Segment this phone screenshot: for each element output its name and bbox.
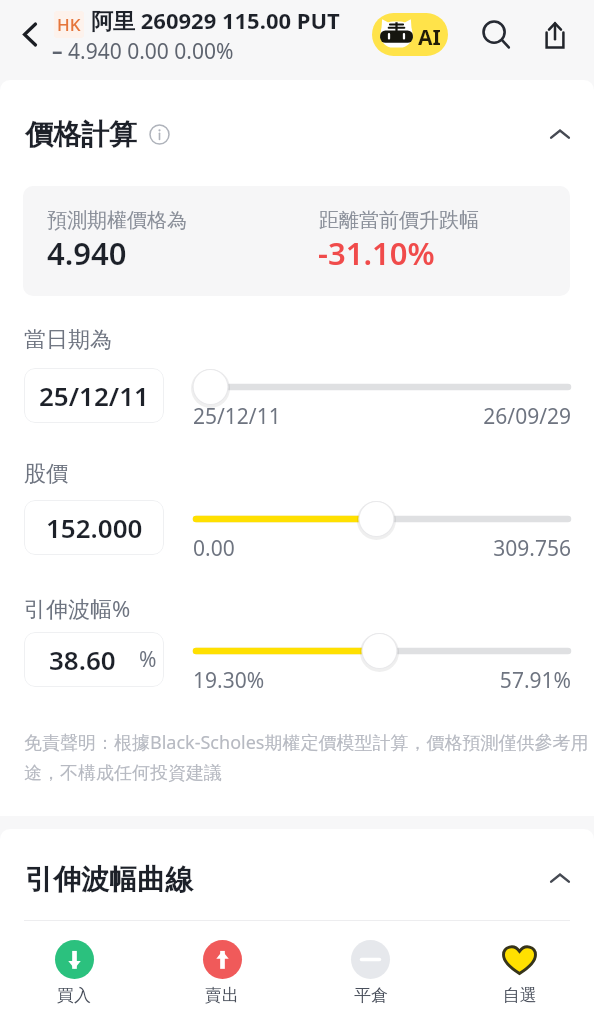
staticText: 賣出 [205, 985, 239, 1006]
button[interactable]: Search [474, 13, 518, 57]
staticText: 阿里 260929 115.00 PUT [91, 5, 340, 35]
button[interactable]: 25/12/11 [24, 368, 164, 423]
staticText: 25/12/11 [193, 402, 281, 431]
button[interactable]: 152.000 [24, 500, 164, 555]
button[interactable]: 平倉 [296, 921, 445, 1024]
staticText: 當日期為 [24, 326, 112, 354]
button[interactable]: Collapse volatility curve [541, 860, 579, 898]
button[interactable]: 自選 [445, 921, 594, 1024]
staticText: 預測期權價格為 [47, 208, 187, 233]
button[interactable]: Share [533, 13, 577, 57]
staticText: 26/09/29 [300, 402, 571, 431]
staticText: AI [418, 23, 441, 52]
staticText: 距離當前價升跌幅 [319, 208, 479, 233]
staticText: 57.91% [300, 666, 571, 695]
staticText: 免責聲明：根據Black-Scholes期權定價模型計算，價格預測僅供參考用途，… [24, 730, 590, 785]
staticText: 買入 [57, 985, 91, 1006]
button[interactable]: 賣出 [148, 921, 296, 1024]
button[interactable]: 股價 slider [176, 499, 586, 539]
staticText: 引伸波幅% [24, 593, 131, 623]
staticText: 價格計算 [25, 117, 137, 152]
staticText: % [139, 645, 157, 674]
button[interactable]: AI assistant [372, 13, 448, 56]
staticText: 38.60 [49, 642, 116, 677]
staticText: 自選 [503, 985, 537, 1006]
staticText: 股價 [24, 460, 68, 488]
staticText: 4.940 [47, 232, 127, 274]
staticText: – [52, 37, 63, 66]
staticText: 4.940 0.00 0.00% [68, 37, 234, 66]
button[interactable]: Collapse price calculation [541, 116, 579, 154]
button[interactable]: 38.60 [24, 632, 164, 687]
staticText: 引伸波幅曲線 [25, 862, 193, 897]
staticText: 19.30% [193, 666, 265, 695]
staticText: -31.10% [318, 232, 435, 274]
button[interactable]: 當日期為 slider [176, 367, 586, 407]
button[interactable]: Info [149, 124, 170, 145]
button[interactable]: Back [8, 12, 52, 56]
staticText: 25/12/11 [39, 378, 149, 413]
staticText: 152.000 [46, 510, 143, 545]
staticText: 0.00 [193, 534, 235, 563]
button[interactable]: 買入 [0, 921, 148, 1024]
staticText: 平倉 [354, 985, 388, 1006]
staticText: 309.756 [300, 534, 571, 563]
staticText: HK [57, 13, 81, 36]
button[interactable]: 引伸波幅% slider [176, 631, 586, 671]
